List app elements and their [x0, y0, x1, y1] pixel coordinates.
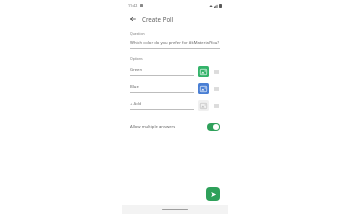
- button[interactable]: Add image: [198, 100, 209, 111]
- button[interactable]: Reorder: [212, 102, 220, 110]
- button[interactable]: Green: [130, 65, 220, 78]
- staticText: Green: [130, 67, 143, 73]
- staticText: Which color do you prefer for #kMaterial…: [130, 40, 220, 46]
- button[interactable]: Send poll: [206, 187, 220, 201]
- staticText: + Add: [130, 101, 142, 107]
- button[interactable]: Add image: [198, 83, 209, 94]
- staticText: Allow multiple answers: [130, 124, 176, 130]
- staticText: Create Poll: [142, 15, 174, 23]
- button[interactable]: Reorder: [212, 85, 220, 93]
- staticText: Blue: [130, 84, 139, 90]
- button[interactable]: Blue: [130, 82, 220, 95]
- button[interactable]: Reorder: [212, 68, 220, 76]
- button[interactable]: Back: [128, 14, 138, 24]
- button[interactable]: Allow multiple answers: [122, 120, 228, 134]
- button[interactable]: Add image: [198, 66, 209, 77]
- other: Allow multiple answers toggle: [207, 123, 220, 131]
- staticText: Options: [130, 56, 143, 61]
- staticText: 11:42: [128, 3, 138, 8]
- button[interactable]: + Add: [130, 99, 220, 112]
- staticText: Question: [130, 31, 145, 36]
